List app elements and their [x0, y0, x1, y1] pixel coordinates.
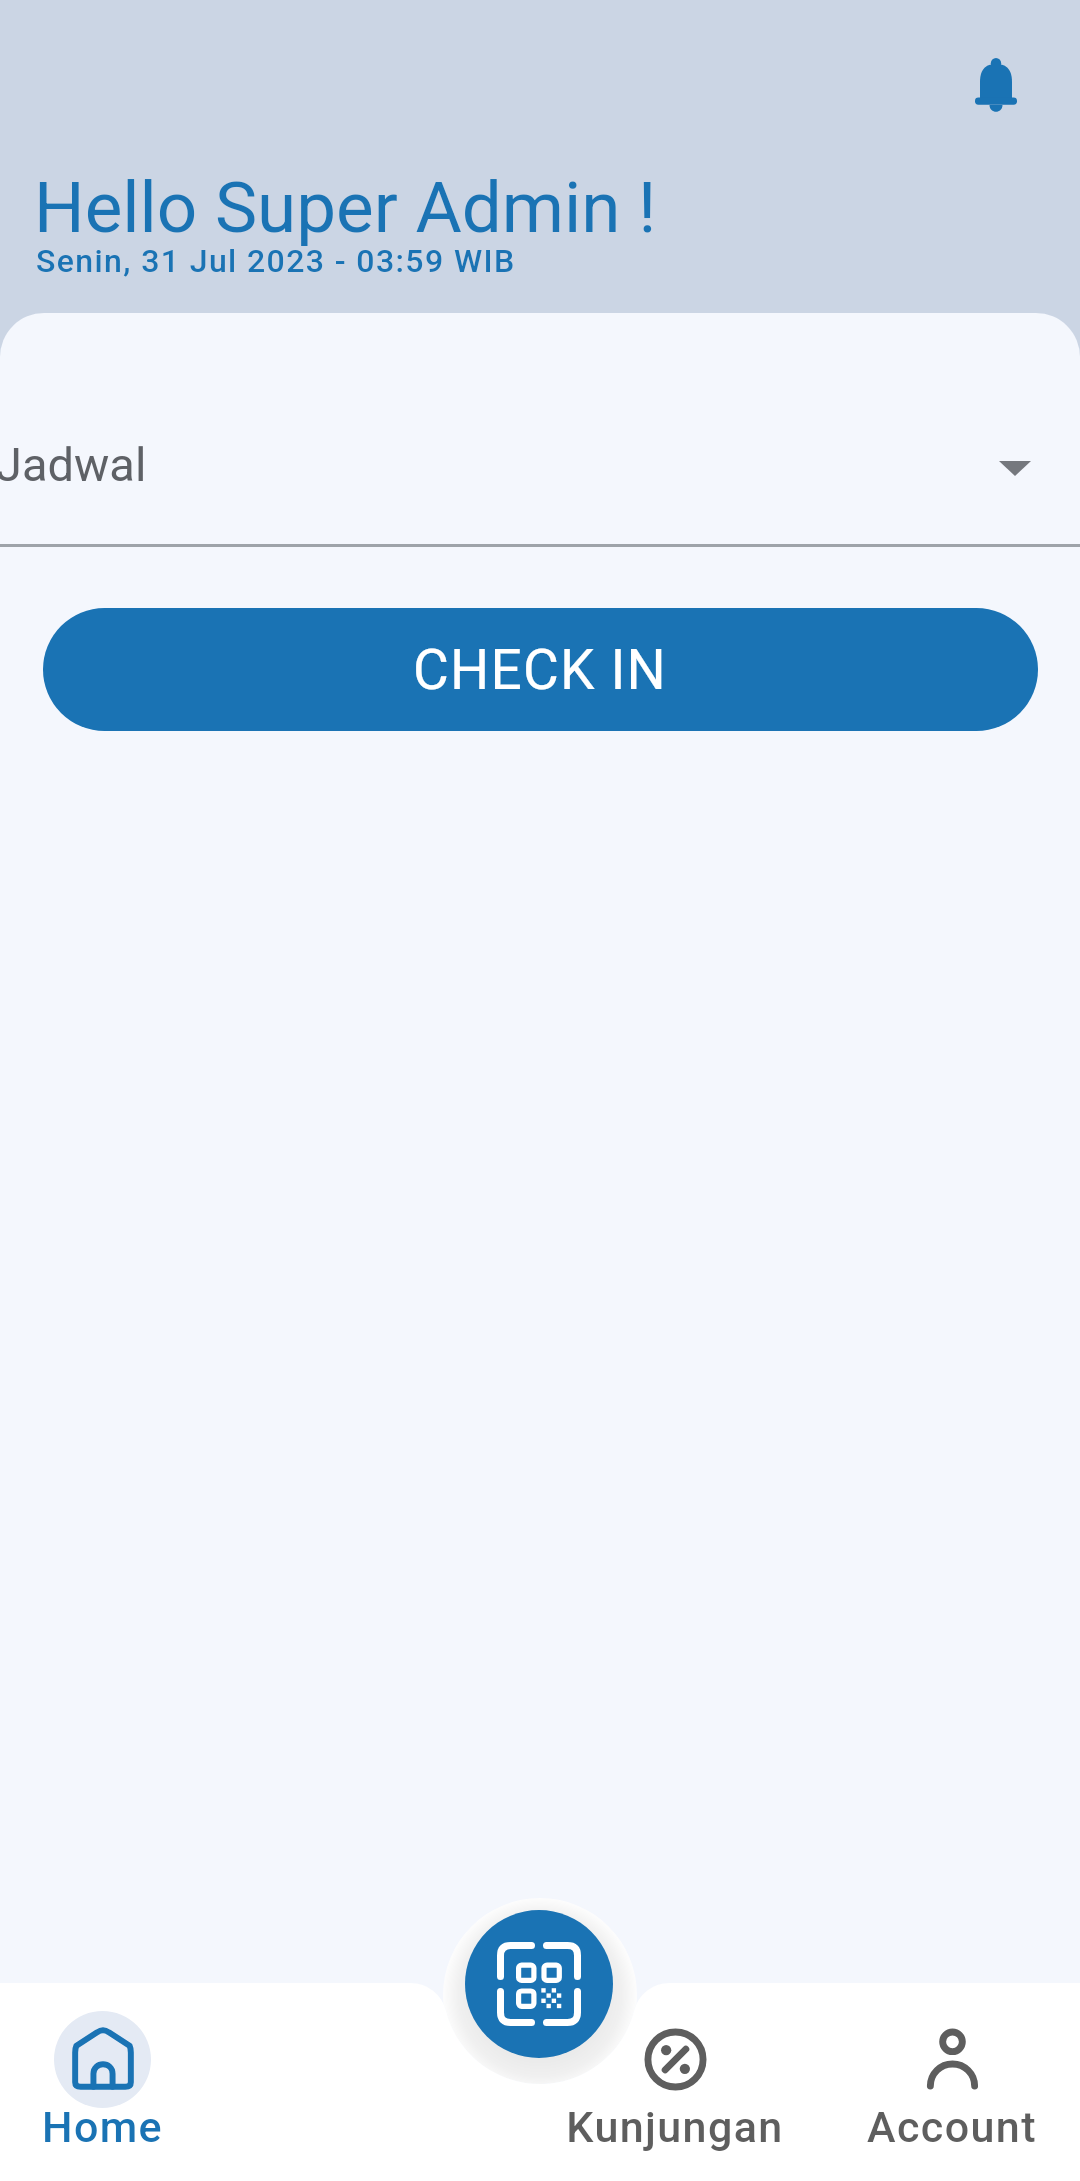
- staticText: Home: [42, 2102, 163, 2152]
- staticText: Kunjungan: [566, 2102, 784, 2152]
- button[interactable]: Notifications: [952, 41, 1040, 133]
- button[interactable]: Account: [842, 2011, 1062, 2158]
- staticText: Hello Super Admin !: [34, 166, 657, 249]
- button[interactable]: Jadwal: [0, 313, 1080, 547]
- staticText: Jadwal: [0, 437, 147, 492]
- button[interactable]: Kunjungan: [565, 2011, 785, 2158]
- button[interactable]: Home: [0, 2011, 212, 2158]
- button[interactable]: Scan QR code: [465, 1910, 613, 2058]
- staticText: Account: [867, 2102, 1037, 2152]
- button[interactable]: CHECK IN: [43, 608, 1038, 731]
- staticText: Senin, 31 Jul 2023 - 03:59 WIB: [36, 242, 516, 280]
- staticText: CHECK IN: [413, 638, 668, 702]
